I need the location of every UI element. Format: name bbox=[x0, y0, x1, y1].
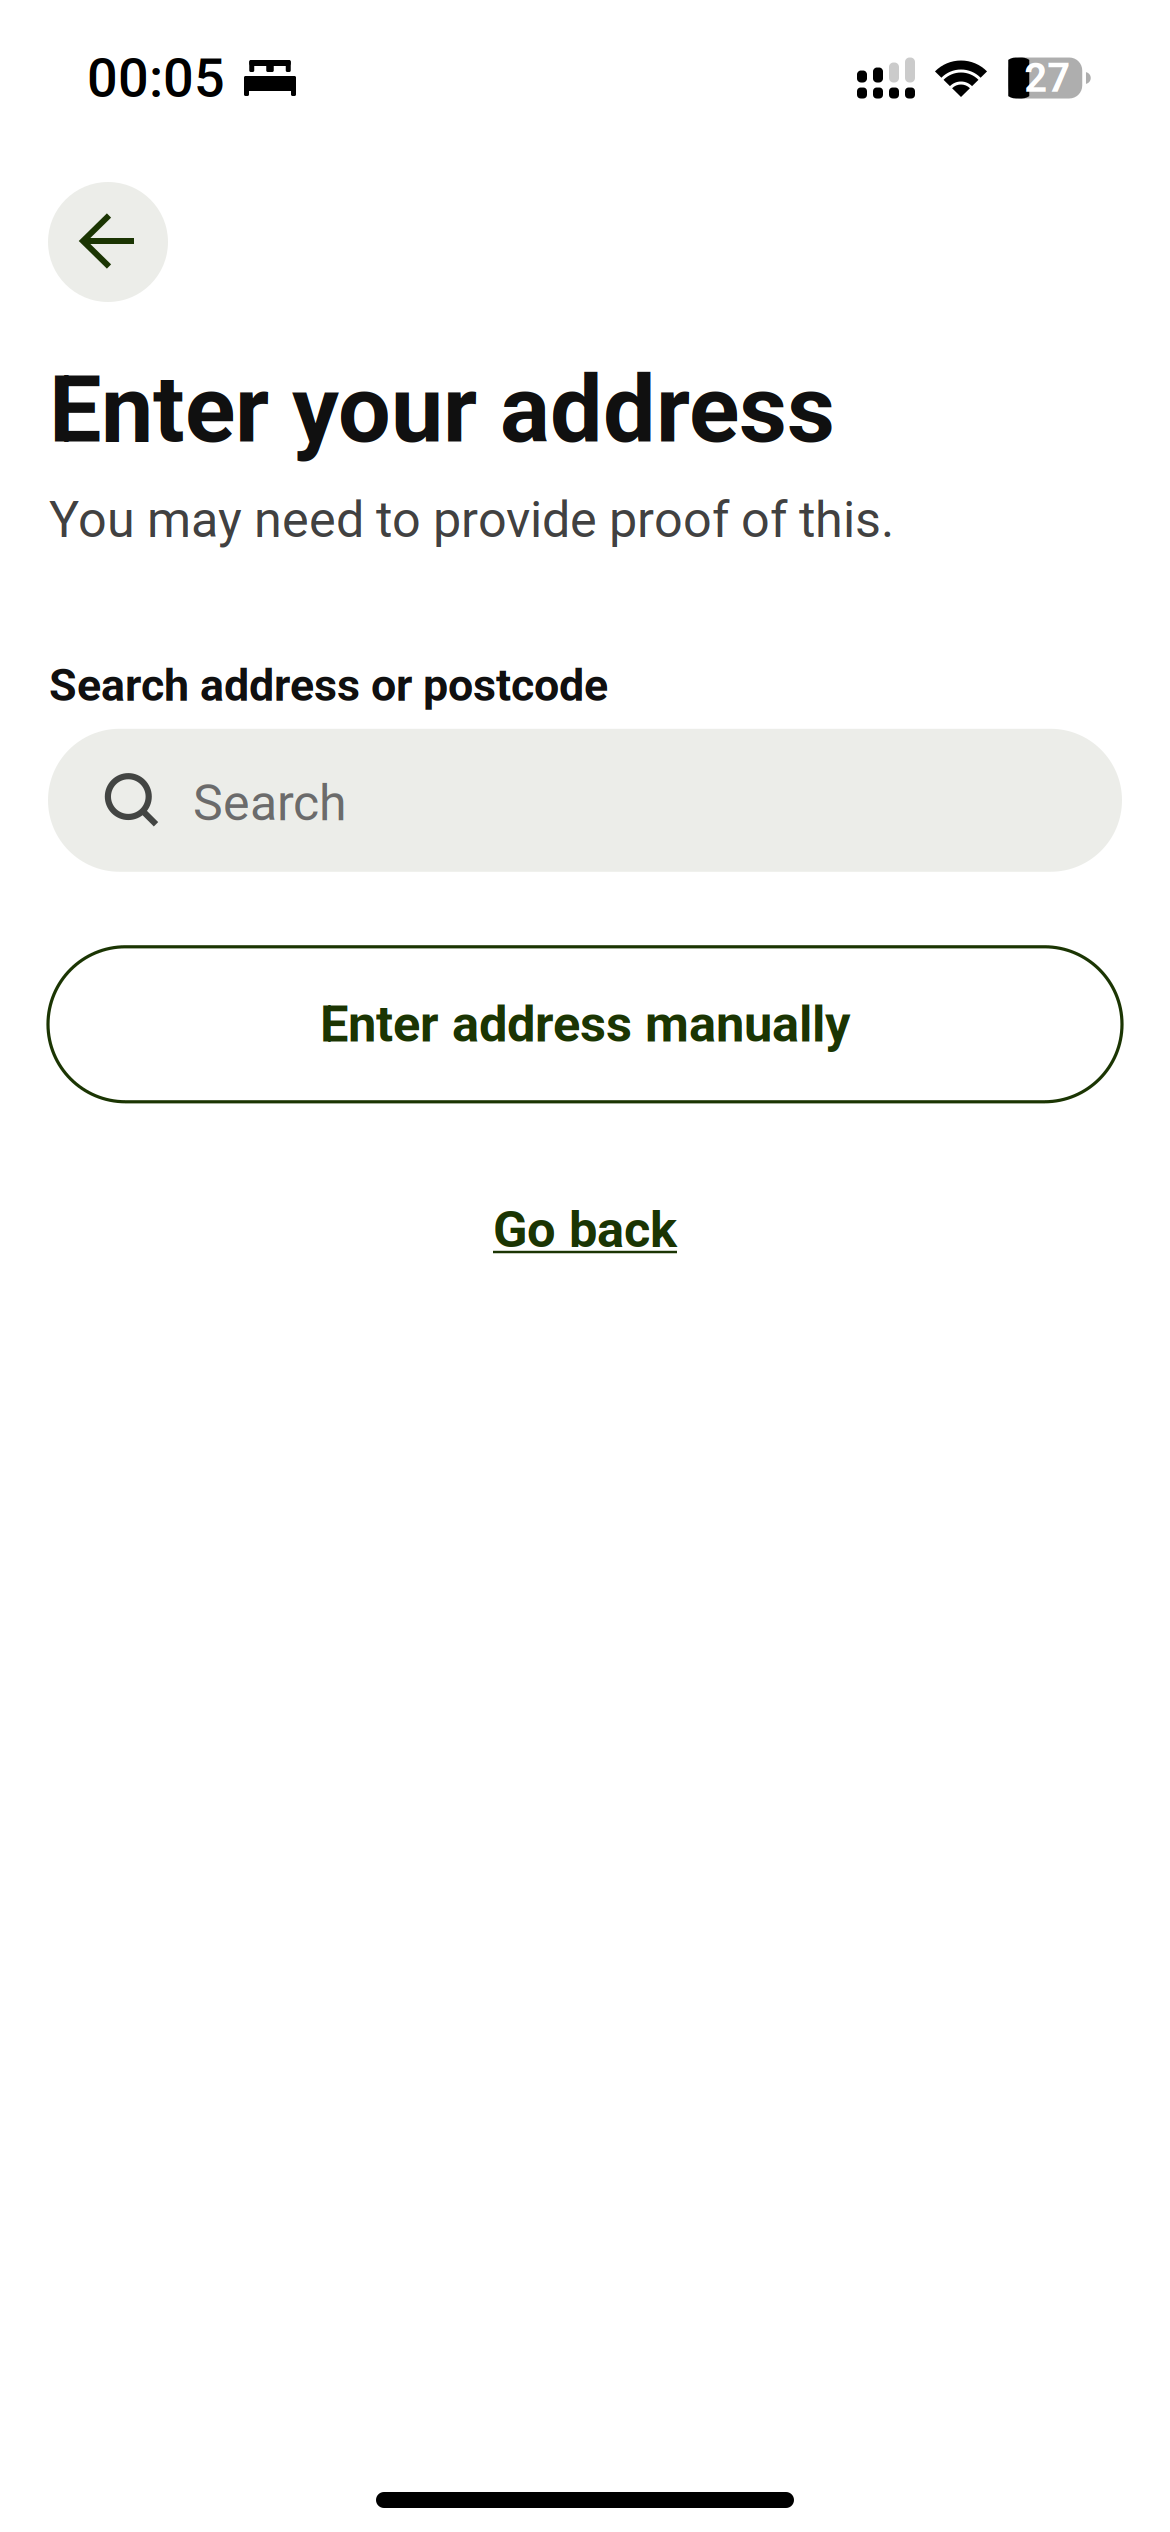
staticText: Go back bbox=[493, 1200, 677, 1259]
button[interactable]: Go back bbox=[469, 1191, 701, 1269]
staticText: You may need to provide proof of this. bbox=[49, 490, 894, 549]
button[interactable]: Back bbox=[48, 182, 168, 302]
staticText: Search address or postcode bbox=[49, 659, 608, 712]
staticText: 27 bbox=[1024, 55, 1070, 101]
staticText: 00:05 bbox=[87, 46, 225, 110]
staticText: Search bbox=[193, 774, 347, 833]
staticText: Enter your address bbox=[49, 355, 835, 464]
button[interactable]: Enter address manually bbox=[48, 947, 1122, 1102]
staticText: Enter address manually bbox=[320, 995, 850, 1054]
